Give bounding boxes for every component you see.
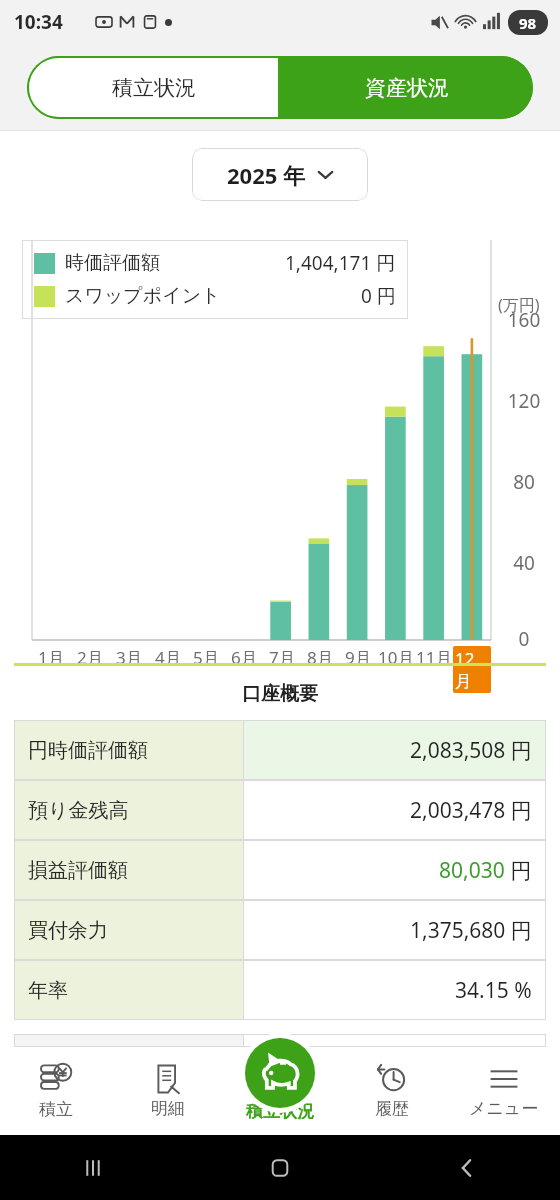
staticText: 10:34	[14, 9, 63, 35]
button[interactable]: 明細	[112, 1047, 224, 1135]
staticText: 時価評価額	[65, 251, 160, 275]
staticText: 4月	[155, 646, 182, 669]
staticText: 買付余力	[28, 918, 108, 943]
staticText: 損益評価額	[28, 858, 128, 883]
staticText: 口座概要	[0, 682, 560, 706]
staticText: 円時価評価額	[28, 738, 148, 763]
staticText: 2月	[77, 646, 104, 669]
staticText: 0	[498, 626, 550, 652]
staticText: 1月	[38, 646, 65, 669]
staticText: 1,404,171 円	[285, 250, 396, 276]
staticText: 2,003,478 円	[410, 796, 532, 825]
staticText: 10月	[378, 646, 415, 669]
staticText: 8月	[307, 646, 334, 669]
staticText: 明細	[151, 1098, 185, 1119]
staticText: 積立状況	[112, 75, 196, 101]
staticText: スワップポイント	[65, 284, 221, 308]
staticText: 2,083,508 円	[410, 736, 532, 765]
button[interactable]: 資産状況	[280, 56, 533, 119]
button[interactable]: 積立	[0, 1047, 112, 1135]
staticText: 預り金残高	[28, 798, 129, 823]
staticText: 積立状況	[246, 1101, 314, 1122]
staticText: 120	[498, 388, 550, 414]
button[interactable]: 積立状況	[224, 1047, 336, 1135]
button[interactable]: 2025 年	[192, 148, 368, 201]
staticText: 80,030	[439, 856, 505, 885]
staticText: 年率	[28, 978, 68, 1003]
staticText: 履歴	[375, 1098, 409, 1119]
staticText: 98	[519, 13, 537, 33]
staticText: 円	[505, 856, 532, 885]
staticText: 3月	[116, 646, 143, 669]
staticText: 11月	[416, 646, 453, 669]
staticText: 0 円	[361, 283, 396, 309]
button[interactable]: 預り金残高	[14, 780, 546, 840]
button[interactable]: 円時価評価額	[14, 720, 546, 780]
staticText: メニュー	[469, 1098, 539, 1119]
button[interactable]: 損益評価額	[14, 840, 546, 900]
staticText: 2025 年	[227, 160, 306, 190]
button[interactable]: 買付余力	[14, 900, 546, 960]
staticText: 資産状況	[365, 75, 449, 101]
staticText: 160	[498, 307, 550, 333]
button[interactable]: 年率	[14, 960, 546, 1020]
button[interactable]: 積立状況	[245, 1038, 315, 1108]
button[interactable]: メニュー	[448, 1047, 560, 1135]
staticText: 80	[498, 469, 550, 495]
staticText: 9月	[345, 646, 372, 669]
staticText: 5月	[193, 646, 220, 669]
button[interactable]: 積立状況	[29, 58, 278, 117]
staticText: 1,375,680 円	[410, 916, 532, 945]
staticText: 12月	[455, 647, 489, 692]
staticText: 34.15 %	[455, 976, 532, 1005]
button[interactable]: 履歴	[336, 1047, 448, 1135]
staticText: 7月	[269, 646, 296, 669]
staticText: 積立	[39, 1099, 73, 1120]
staticText: (万円)	[498, 294, 540, 316]
staticText: 6月	[231, 646, 258, 669]
staticText: 40	[498, 550, 550, 576]
